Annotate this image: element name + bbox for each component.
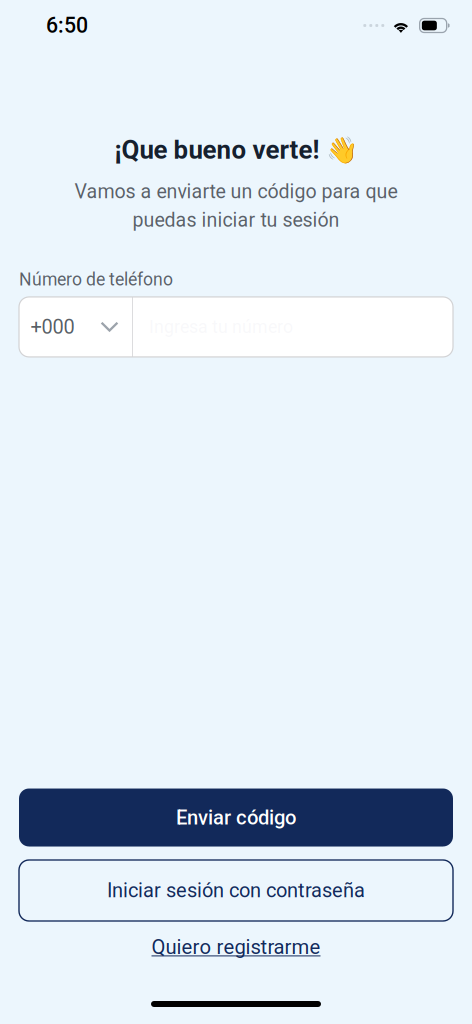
button[interactable]: Enviar código: [19, 788, 453, 846]
staticText: puedas iniciar tu sesión: [132, 208, 339, 231]
staticText: Enviar código: [176, 806, 296, 829]
button[interactable]: +000: [19, 297, 132, 357]
staticText: Iniciar sesión con contraseña: [107, 879, 365, 902]
staticText: Quiero registrarme: [151, 935, 320, 959]
staticText: Número de teléfono: [19, 269, 173, 290]
staticText: ¡Que bueno verte! 👋: [114, 135, 357, 165]
button[interactable]: Ingresa tu número: [133, 297, 453, 357]
staticText: Vamos a enviarte un código para que: [74, 180, 397, 203]
staticText: 6:50: [46, 13, 88, 38]
button[interactable]: Quiero registrarme: [151, 936, 320, 958]
button[interactable]: Iniciar sesión con contraseña: [19, 860, 453, 921]
staticText: +000: [30, 315, 74, 339]
